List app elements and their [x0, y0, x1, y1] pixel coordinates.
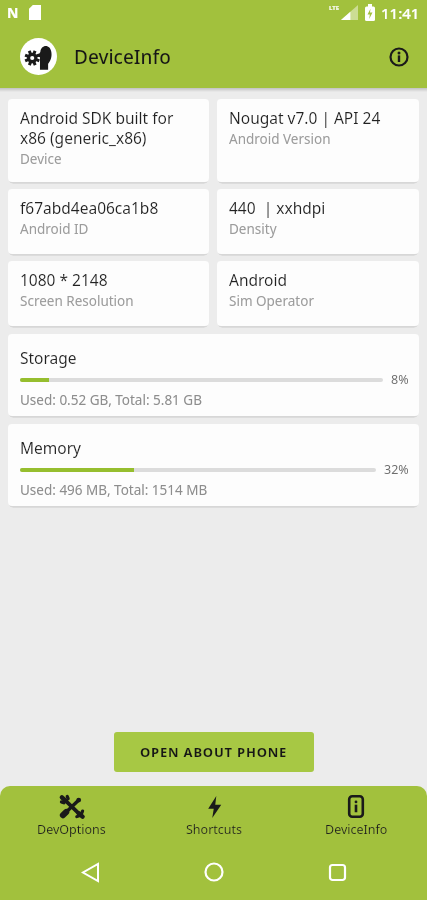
staticText: DevOptions — [37, 821, 106, 838]
staticText: Nougat v7.0 | API 24 — [229, 107, 381, 128]
staticText: LTE — [329, 4, 340, 12]
button[interactable]: 1080 * 2148 — [8, 261, 209, 326]
staticText: Android Version — [229, 130, 331, 148]
staticText: Density — [229, 220, 277, 238]
button[interactable] — [325, 860, 349, 884]
button[interactable] — [388, 46, 410, 68]
staticText: 8% — [391, 371, 409, 388]
staticText: Sim Operator — [229, 292, 314, 310]
button[interactable]: 440 | xxhdpi — [217, 189, 419, 254]
staticText: Shortcuts — [186, 821, 243, 838]
button[interactable]: Memory — [8, 424, 419, 506]
button[interactable]: Android — [217, 261, 419, 326]
staticText: Screen Resolution — [20, 292, 134, 310]
button[interactable]: Storage — [8, 334, 419, 416]
staticText: OPEN ABOUT PHONE — [140, 743, 288, 761]
button[interactable]: OPEN ABOUT PHONE — [114, 732, 314, 772]
staticText: 440 | xxhdpi — [229, 197, 326, 218]
staticText: 11:41 — [381, 3, 420, 23]
button[interactable] — [78, 860, 102, 884]
staticText: f67abd4ea06ca1b8 — [20, 197, 159, 218]
staticText: Android SDK built for x86 (generic_x86) — [20, 107, 174, 148]
staticText: 32% — [384, 461, 409, 478]
button[interactable]: DevOptions — [0, 786, 143, 844]
button[interactable] — [202, 860, 226, 884]
staticText: DeviceInfo — [325, 821, 388, 838]
staticText: Device — [20, 150, 62, 168]
button[interactable]: DeviceInfo — [285, 786, 427, 844]
staticText: DeviceInfo — [74, 44, 171, 70]
staticText: Storage — [20, 347, 77, 368]
button[interactable]: Shortcuts — [143, 786, 285, 844]
staticText: N — [7, 3, 19, 22]
staticText: Used: 496 MB, Total: 1514 MB — [20, 481, 208, 499]
button[interactable]: Nougat v7.0 | API 24 — [217, 99, 419, 182]
staticText: Android — [229, 269, 288, 290]
button[interactable]: Android SDK built for x86 (generic_x86) — [8, 99, 209, 182]
button[interactable]: f67abd4ea06ca1b8 — [8, 189, 209, 254]
staticText: Memory — [20, 437, 81, 458]
staticText: Android ID — [20, 220, 89, 238]
staticText: 1080 * 2148 — [20, 269, 108, 290]
staticText: Used: 0.52 GB, Total: 5.81 GB — [20, 391, 202, 409]
